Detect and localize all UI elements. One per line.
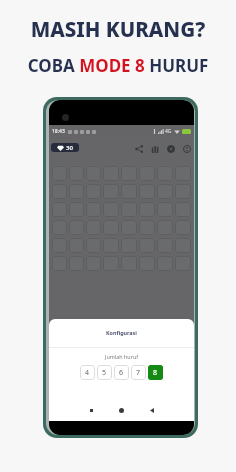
staticText: 4 <box>85 368 90 378</box>
button[interactable]: 7 <box>131 365 146 380</box>
button[interactable]: Help <box>179 141 194 157</box>
button[interactable]: 5 <box>97 365 112 380</box>
button[interactable]: 30 <box>51 143 79 152</box>
staticText: 7 <box>136 368 141 378</box>
button[interactable]: 8 <box>148 365 163 380</box>
staticText: COBA MODE 8 HURUF <box>0 54 236 77</box>
button[interactable]: 4 <box>80 365 95 380</box>
staticText: 5 <box>102 368 107 378</box>
staticText: 30 <box>66 144 73 152</box>
button[interactable]: 6 <box>114 365 129 380</box>
button[interactable]: Back <box>144 402 160 418</box>
staticText: Jumlah huruf <box>105 353 139 360</box>
staticText: 6 <box>119 368 124 378</box>
button[interactable]: Recents <box>83 402 99 418</box>
staticText: 18:43 <box>52 128 65 135</box>
staticText: Konfigurasi <box>106 329 137 336</box>
staticText: 4G <box>165 128 172 135</box>
button[interactable]: Home <box>113 402 129 418</box>
staticText: 8 <box>153 368 158 378</box>
button[interactable]: Settings <box>163 141 179 157</box>
button[interactable]: Statistics <box>147 141 163 157</box>
staticText: MASIH KURANG? <box>0 15 236 43</box>
button[interactable]: Share <box>131 141 147 157</box>
